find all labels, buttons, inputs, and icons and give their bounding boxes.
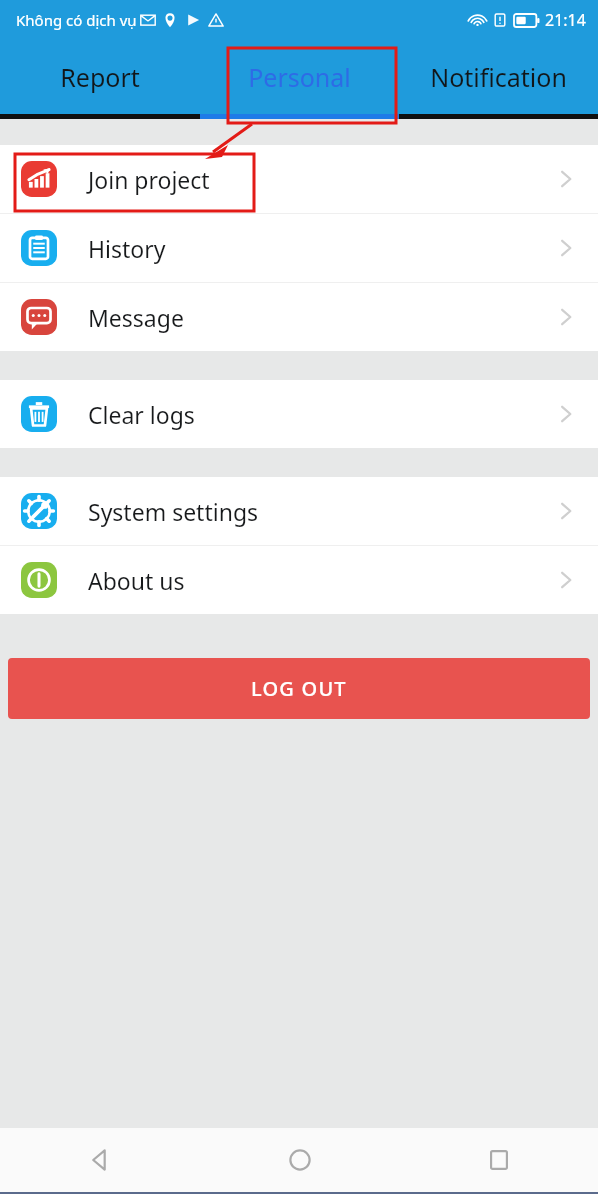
- staticText: LOG OUT: [251, 675, 347, 702]
- button[interactable]: History: [0, 214, 598, 282]
- button[interactable]: System settings: [0, 477, 598, 545]
- staticText: 21:14: [545, 9, 586, 31]
- button[interactable]: LOG OUT: [8, 658, 590, 719]
- staticText: Report: [60, 60, 140, 94]
- staticText: Message: [88, 302, 184, 333]
- staticText: Không có dịch vụ: [16, 10, 137, 30]
- staticText: Clear logs: [88, 399, 195, 430]
- button[interactable]: About us: [0, 546, 598, 614]
- button[interactable]: Personal: [200, 40, 399, 114]
- button[interactable]: Recent apps: [399, 1128, 598, 1192]
- staticText: System settings: [88, 496, 259, 527]
- button[interactable]: Join project: [0, 145, 598, 213]
- button[interactable]: Back: [0, 1128, 200, 1192]
- staticText: Notification: [430, 60, 567, 94]
- staticText: Join project: [88, 164, 210, 195]
- button[interactable]: Home: [200, 1128, 399, 1192]
- button[interactable]: Clear logs: [0, 380, 598, 448]
- button[interactable]: Message: [0, 283, 598, 351]
- staticText: Personal: [248, 60, 351, 94]
- button[interactable]: Notification: [399, 40, 598, 114]
- staticText: History: [88, 233, 166, 264]
- button[interactable]: Report: [0, 40, 200, 114]
- staticText: About us: [88, 565, 185, 596]
